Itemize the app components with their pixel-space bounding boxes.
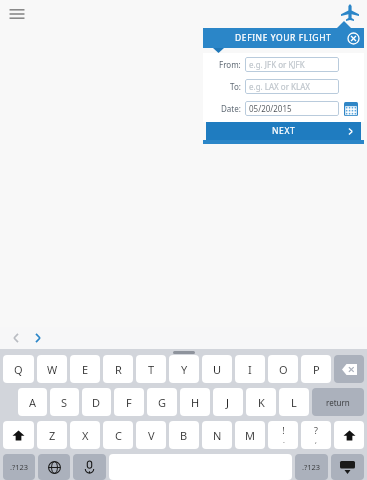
staticText: A — [29, 395, 37, 410]
staticText: , — [315, 436, 317, 446]
staticText: .?123 — [10, 462, 29, 472]
button[interactable]: G — [147, 388, 177, 416]
button[interactable]: Q — [3, 355, 34, 383]
button[interactable]: .?123 — [295, 454, 328, 480]
staticText: To: — [230, 81, 241, 92]
button[interactable]: I — [235, 355, 265, 383]
button[interactable]: .?123 — [3, 454, 35, 480]
staticText: G — [158, 395, 167, 410]
staticText: e.g. LAX or KLAX — [249, 81, 311, 92]
staticText: V — [148, 428, 155, 443]
staticText: From: — [219, 59, 241, 70]
staticText: M — [245, 428, 255, 443]
button[interactable]: M — [235, 421, 265, 449]
button[interactable]: Next field — [30, 330, 46, 346]
staticText: e.g. JFK or KJFK — [249, 59, 305, 70]
button[interactable]: NEXT — [206, 122, 361, 140]
button[interactable]: ? — [301, 421, 331, 449]
button[interactable]: R — [103, 355, 133, 383]
button[interactable]: Hide keyboard — [331, 454, 364, 480]
button[interactable]: W — [37, 355, 67, 383]
staticText: U — [213, 362, 222, 377]
button[interactable]: N — [202, 421, 232, 449]
button[interactable]: K — [246, 388, 276, 416]
button[interactable]: e.g. LAX or KLAX — [245, 79, 339, 94]
button[interactable]: Close — [347, 32, 360, 45]
button[interactable]: Dictation — [73, 454, 106, 480]
button[interactable]: D — [82, 388, 111, 416]
staticText: E — [82, 362, 89, 377]
button[interactable]: C — [103, 421, 133, 449]
staticText: B — [180, 428, 188, 443]
button[interactable]: Flight — [340, 2, 360, 22]
button[interactable]: Menu — [6, 3, 28, 25]
staticText: .?123 — [302, 462, 321, 472]
staticText: ? — [314, 424, 318, 436]
staticText: N — [213, 428, 222, 443]
staticText: Q — [14, 362, 23, 377]
staticText: F — [126, 395, 132, 410]
button[interactable]: V — [136, 421, 166, 449]
staticText: I — [248, 362, 252, 377]
staticText: C — [115, 428, 122, 443]
button[interactable]: Y — [169, 355, 199, 383]
button[interactable]: 05/20/2015 — [245, 101, 339, 116]
button[interactable]: L — [279, 388, 309, 416]
button[interactable]: T — [136, 355, 166, 383]
staticText: NEXT — [272, 125, 296, 137]
button[interactable]: J — [213, 388, 243, 416]
button[interactable]: X — [70, 421, 100, 449]
staticText: 05/20/2015 — [249, 103, 292, 114]
button[interactable]: Backspace — [334, 355, 364, 383]
button[interactable]: U — [202, 355, 232, 383]
button[interactable]: P — [301, 355, 331, 383]
staticText: S — [61, 395, 68, 410]
staticText: P — [313, 362, 320, 377]
staticText: DEFINE YOUR FLIGHT — [235, 32, 332, 44]
staticText: Y — [181, 362, 188, 377]
button[interactable]: Shift — [3, 421, 34, 449]
button[interactable]: Z — [37, 421, 67, 449]
button[interactable]: B — [169, 421, 199, 449]
staticText: X — [82, 428, 89, 443]
button[interactable]: F — [114, 388, 144, 416]
button[interactable]: Previous — [8, 330, 24, 346]
staticText: L — [291, 395, 297, 410]
button[interactable]: Pick date — [344, 102, 358, 116]
staticText: return — [326, 397, 350, 408]
staticText: R — [115, 362, 122, 377]
staticText: D — [92, 395, 101, 410]
staticText: Z — [49, 428, 56, 443]
button[interactable]: Shift — [334, 421, 364, 449]
button[interactable]: ! — [268, 421, 298, 449]
staticText: J — [226, 395, 230, 410]
staticText: Date: — [221, 103, 241, 114]
staticText: O — [279, 362, 288, 377]
staticText: T — [148, 362, 155, 377]
button[interactable]: O — [268, 355, 298, 383]
button[interactable]: return — [312, 388, 364, 416]
staticText: . — [283, 436, 285, 446]
staticText: H — [191, 395, 200, 410]
button[interactable]: S — [50, 388, 79, 416]
button[interactable]: A — [18, 388, 47, 416]
button[interactable]: E — [70, 355, 100, 383]
staticText: W — [47, 362, 58, 377]
staticText: K — [258, 395, 265, 410]
staticText: ! — [282, 424, 285, 436]
button[interactable]: e.g. JFK or KJFK — [245, 57, 339, 72]
button[interactable]: H — [180, 388, 210, 416]
button[interactable]: Change keyboard — [38, 454, 70, 480]
